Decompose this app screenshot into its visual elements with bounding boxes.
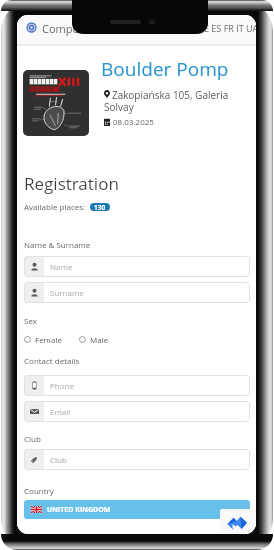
staticText: Phone (50, 380, 74, 391)
button[interactable]: reCAPTCHA (220, 509, 256, 534)
staticText: Sex (24, 315, 37, 326)
button[interactable]: UNITED KINGDOM (24, 500, 250, 519)
button[interactable]: Name (24, 256, 250, 277)
staticText: Country (24, 485, 54, 496)
staticText: Contact details (24, 355, 80, 366)
staticText: UNITED KINGDOM (47, 505, 111, 515)
staticText: Registration (24, 172, 119, 195)
staticText: Club (24, 433, 41, 444)
button[interactable]: Male (79, 334, 109, 345)
staticText: Club (50, 454, 67, 465)
staticText: E ES FR IT UA (204, 22, 256, 34)
staticText: Name & Surname (24, 239, 91, 250)
staticText: Available places: (24, 201, 86, 212)
button[interactable]: Club (24, 449, 250, 470)
staticText: Female (35, 334, 63, 345)
button[interactable]: Email (24, 401, 250, 422)
staticText: Solvay (104, 100, 134, 114)
button[interactable]: Phone (24, 375, 250, 396)
staticText: Name (50, 261, 73, 272)
staticText: 08.03.2025 (113, 116, 154, 127)
button[interactable]: Surname (24, 282, 250, 303)
staticText: Boulder Pomp (101, 56, 229, 82)
staticText: Male (90, 334, 109, 345)
button[interactable]: Female (24, 334, 63, 345)
staticText: 130 (94, 203, 106, 211)
other: Event poster (23, 70, 89, 136)
staticText: Email (50, 406, 71, 417)
staticText: Surname (50, 287, 84, 298)
staticText: Zakopiańska 105, Galeria (112, 88, 229, 102)
staticText: Compet (42, 21, 83, 36)
